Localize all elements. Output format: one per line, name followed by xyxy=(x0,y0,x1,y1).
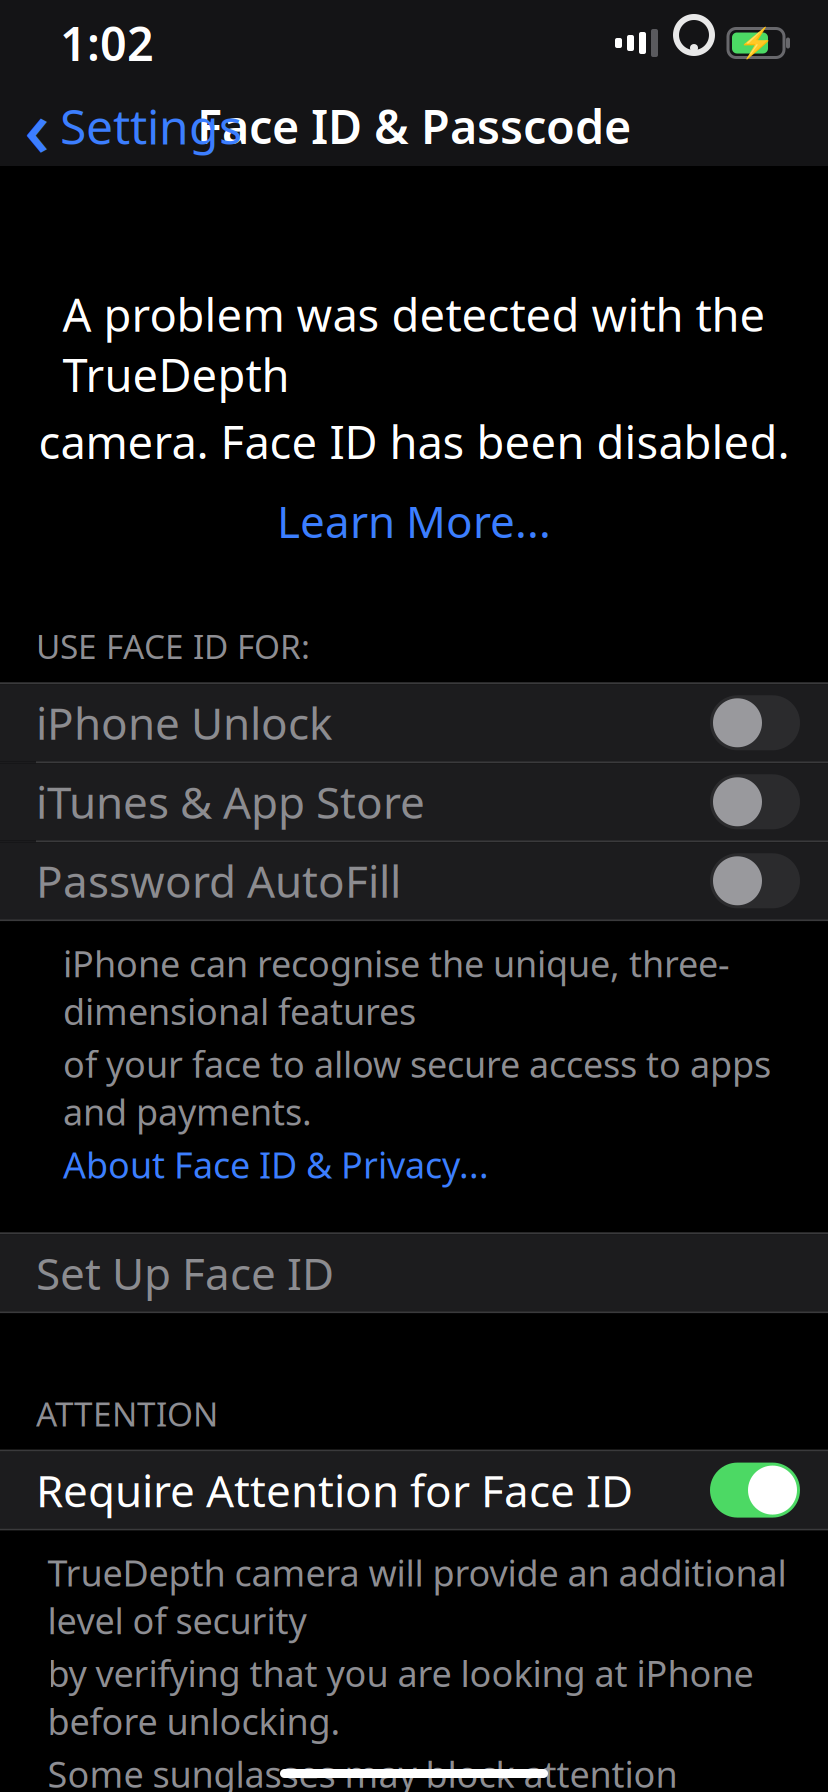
staticText: A problem was detected with the TrueDept… xyxy=(62,284,765,404)
staticText: iPhone Unlock xyxy=(36,694,332,752)
staticText: Require Attention for Face ID xyxy=(36,1461,633,1519)
staticText: Set Up Face ID xyxy=(36,1244,334,1302)
staticText: Password AutoFill xyxy=(36,852,401,910)
button[interactable]: About Face ID & Privacy... xyxy=(63,1140,489,1188)
staticText: of your face to allow secure access to a… xyxy=(63,1040,771,1135)
button[interactable]: Require Attention for Face ID xyxy=(0,1452,828,1529)
staticText: iPhone can recognise the unique, three-d… xyxy=(63,939,730,1035)
staticText: ⚡ xyxy=(737,26,774,60)
button[interactable]: ‹ xyxy=(0,86,256,166)
staticText: Learn More... xyxy=(277,492,551,550)
button[interactable]: Set Up Face ID xyxy=(0,1234,828,1311)
button[interactable]: Password AutoFill xyxy=(0,842,828,919)
button[interactable]: iTunes & App Store xyxy=(0,763,828,840)
button[interactable]: iPhone Unlock xyxy=(0,684,828,761)
staticText: ‹ xyxy=(24,73,50,179)
staticText: Face ID & Passcode xyxy=(197,95,631,157)
staticText: iTunes & App Store xyxy=(36,773,425,831)
staticText: ATTENTION xyxy=(36,1391,218,1436)
staticText: Some sunglasses may block attention dete… xyxy=(47,1750,677,1792)
staticText: USE FACE ID FOR: xyxy=(36,624,310,668)
staticText: by verifying that you are looking at iPh… xyxy=(47,1649,753,1745)
staticText: camera. Face ID has been disabled. xyxy=(38,411,789,472)
staticText: 1:02 xyxy=(60,12,154,74)
staticText: TrueDepth camera will provide an additio… xyxy=(47,1549,786,1644)
staticText: Settings xyxy=(60,94,242,158)
button[interactable]: Learn More... xyxy=(253,472,575,558)
staticText: About Face ID & Privacy... xyxy=(63,1140,489,1188)
